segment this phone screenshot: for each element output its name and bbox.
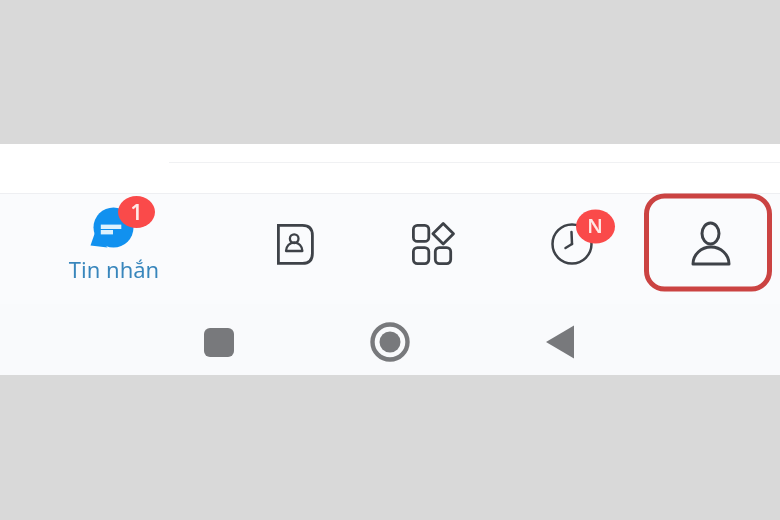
- staticText: Tin nhắn: [54, 254, 174, 284]
- button[interactable]: 1: [50, 196, 176, 303]
- staticText: 1: [128, 196, 145, 226]
- button[interactable]: Home: [366, 318, 414, 366]
- button[interactable]: Danh bạ: [246, 200, 342, 290]
- staticText: N: [583, 212, 607, 239]
- button[interactable]: Recent apps: [195, 318, 243, 366]
- button[interactable]: Nhật ký: [524, 196, 620, 294]
- button[interactable]: Cá nhân: [640, 188, 778, 298]
- button[interactable]: Back: [536, 318, 584, 366]
- button[interactable]: Khám phá: [384, 200, 480, 290]
